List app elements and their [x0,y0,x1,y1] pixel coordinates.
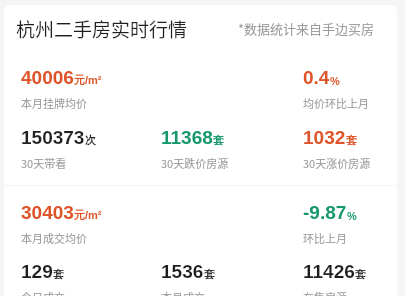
staticText: 本月成交均价 [21,230,87,246]
staticText: 本月成交 [161,289,205,296]
staticText: 1536 [161,261,204,282]
staticText: 30403 [21,202,74,223]
button[interactable]: 150373 [16,127,156,169]
button[interactable]: 1032 [298,127,391,169]
staticText: 11368 [161,127,213,148]
staticText: -9.87 [303,202,347,223]
staticText: 150373 [21,127,85,148]
staticText: 均价环比上月 [303,95,369,111]
staticText: 今日成交 [21,289,65,296]
staticText: 套 [213,133,224,147]
button[interactable]: 11368 [156,127,298,169]
button[interactable]: 11426 [298,261,391,296]
staticText: 0.4 [303,67,330,88]
button[interactable]: 40006 [16,67,156,109]
staticText: 11426 [303,261,355,282]
staticText: 套 [53,267,64,281]
button[interactable]: 1536 [156,261,298,296]
staticText: *数据统计来自手边买房 [238,19,375,38]
staticText: 套 [204,267,215,281]
staticText: % [330,75,340,87]
staticText: 环比上月 [303,230,347,246]
button[interactable]: 30403 [16,202,156,244]
staticText: 在售房源 [303,289,347,296]
staticText: 元/m² [74,73,102,87]
staticText: 杭州二手房实时行情 [16,15,188,43]
staticText: 套 [346,133,357,147]
staticText: 1032 [303,127,346,148]
staticText: 元/m² [74,208,102,222]
button[interactable]: 0.4 [298,67,391,109]
button[interactable]: -9.87 [298,202,391,244]
staticText: 30天跌价房源 [161,155,229,171]
button[interactable]: 129 [16,261,156,296]
button[interactable]: 杭州二手房实时行情 [4,5,397,296]
staticText: 30天涨价房源 [303,155,371,171]
staticText: 套 [355,267,366,281]
staticText: % [347,210,357,222]
staticText: 本月挂牌均价 [21,95,87,111]
staticText: 40006 [21,67,74,88]
staticText: 次 [85,133,96,147]
staticText: 30天带看 [21,155,67,171]
staticText: 129 [21,261,53,282]
